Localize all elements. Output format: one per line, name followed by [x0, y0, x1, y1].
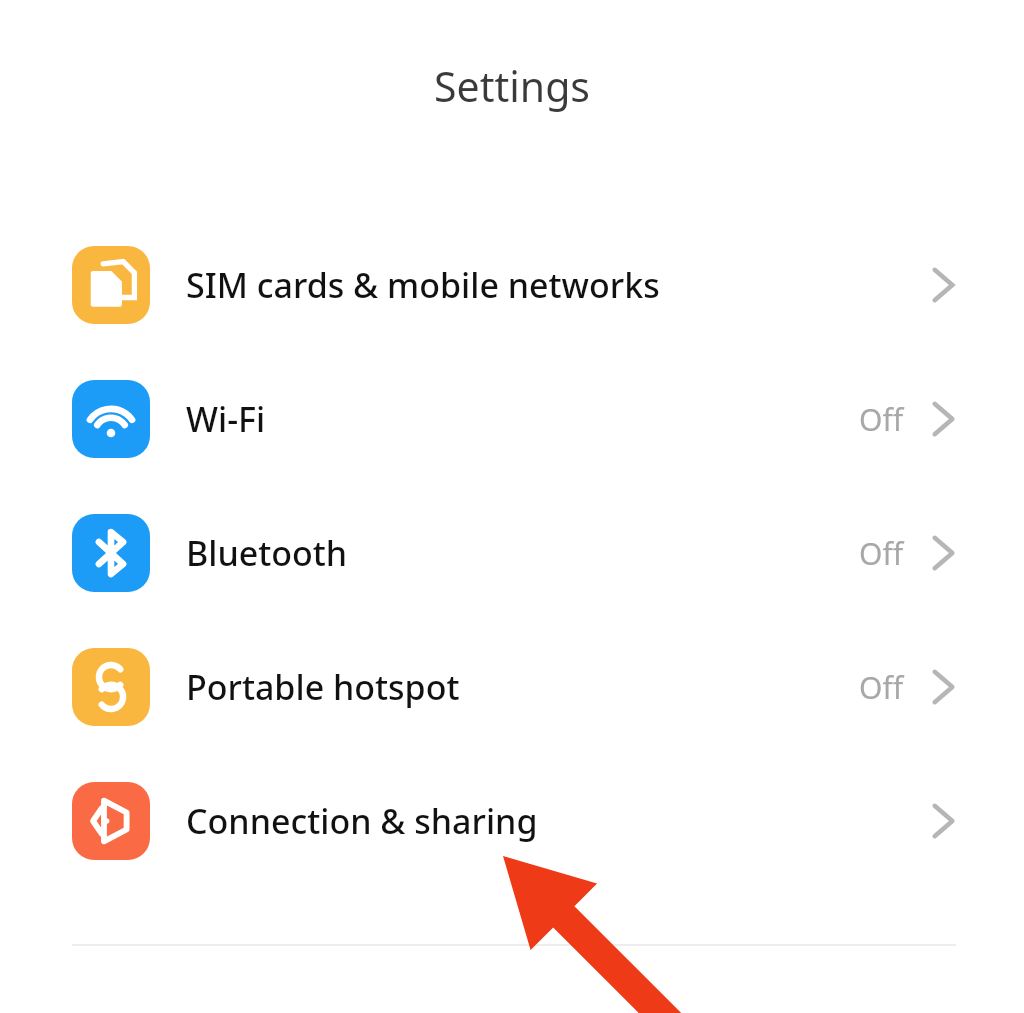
staticText: Wi-Fi — [186, 396, 266, 442]
other: Portable hotspot — [72, 648, 150, 726]
staticText: Settings — [0, 58, 1024, 114]
other: Connection and sharing — [72, 782, 150, 860]
button[interactable]: Bluetooth — [0, 486, 1024, 620]
button[interactable]: Wi-Fi — [0, 352, 1024, 486]
staticText: Off — [859, 399, 904, 440]
staticText: Off — [859, 533, 904, 574]
staticText: SIM cards & mobile networks — [186, 262, 660, 308]
staticText: Off — [859, 667, 904, 708]
staticText: Bluetooth — [186, 530, 348, 576]
button[interactable]: Connection and sharing — [0, 754, 1024, 888]
staticText: Portable hotspot — [186, 664, 460, 710]
button[interactable]: Portable hotspot — [0, 620, 1024, 754]
other: Bluetooth — [72, 514, 150, 592]
other: SIM cards — [72, 246, 150, 324]
staticText: Connection & sharing — [186, 798, 538, 844]
other: Wi-Fi — [72, 380, 150, 458]
button[interactable]: SIM cards — [0, 218, 1024, 352]
